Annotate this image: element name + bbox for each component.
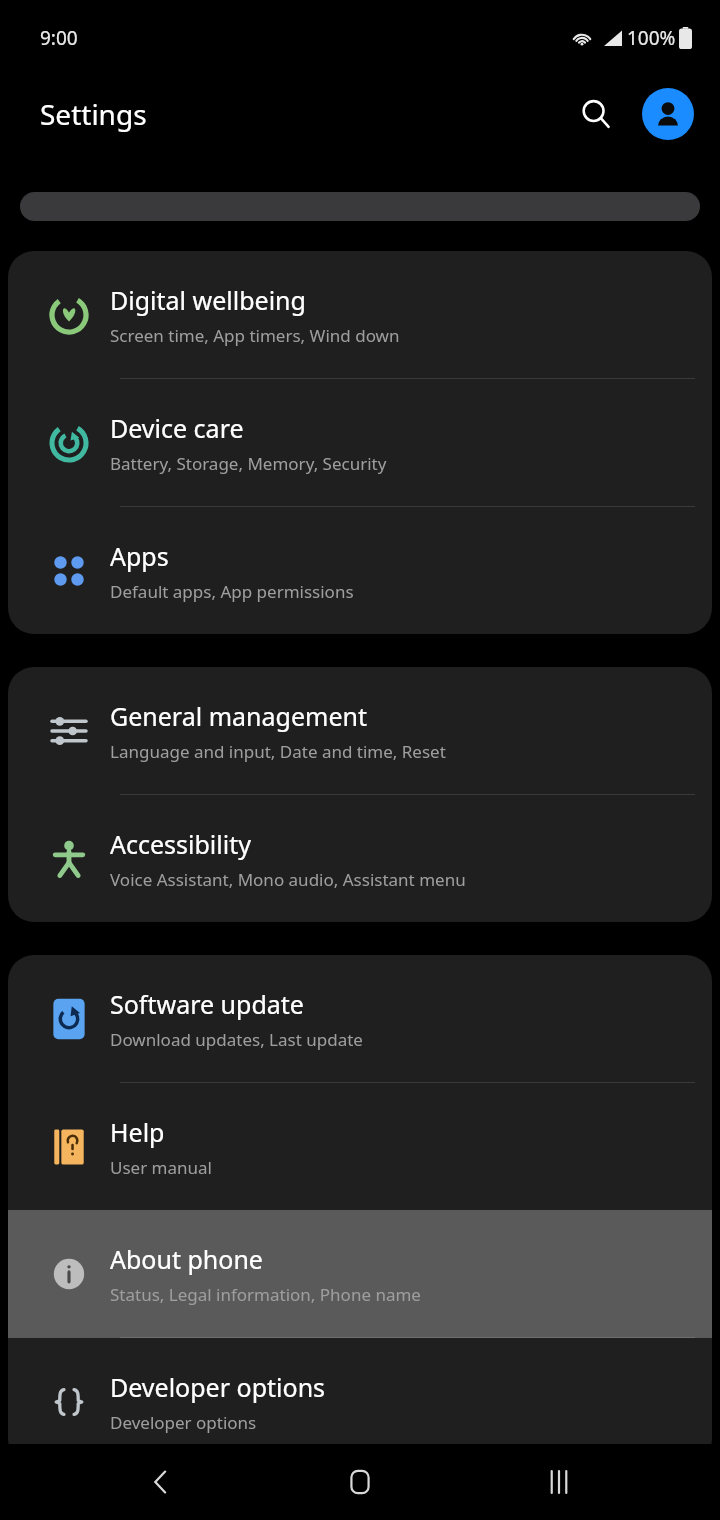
button[interactable]: Back (123, 1444, 199, 1520)
staticText: Language and input, Date and time, Reset (110, 740, 446, 763)
staticText: Developer options (110, 1411, 257, 1434)
staticText: Software update (110, 987, 304, 1021)
staticText: Voice Assistant, Mono audio, Assistant m… (110, 868, 466, 891)
staticText: Default apps, App permissions (110, 580, 354, 603)
staticText: 9:00 (40, 25, 78, 51)
staticText: Digital wellbeing (110, 283, 306, 317)
staticText: Accessibility (110, 827, 251, 861)
button[interactable]: Device care (8, 379, 712, 506)
staticText: Settings (40, 95, 147, 133)
button[interactable]: Help (8, 1083, 712, 1210)
staticText: Screen time, App timers, Wind down (110, 324, 400, 347)
staticText: 100% (627, 25, 676, 51)
button[interactable]: Apps (8, 507, 712, 634)
button[interactable]: Digital wellbeing (8, 251, 712, 378)
button[interactable]: Home (322, 1444, 398, 1520)
button[interactable]: Accessibility (8, 795, 712, 922)
staticText: Apps (110, 539, 169, 573)
staticText: User manual (110, 1156, 212, 1179)
staticText: Status, Legal information, Phone name (110, 1283, 421, 1306)
button[interactable]: Search settings (20, 192, 700, 221)
staticText: Battery, Storage, Memory, Security (110, 452, 387, 475)
button[interactable]: Software update (8, 955, 712, 1082)
button[interactable]: About phone (8, 1210, 712, 1338)
button[interactable]: Search (568, 86, 624, 142)
staticText: About phone (110, 1242, 263, 1276)
button[interactable]: General management (8, 667, 712, 794)
button[interactable]: Recent apps (521, 1444, 597, 1520)
button[interactable]: Account (642, 88, 694, 140)
staticText: Help (110, 1115, 165, 1149)
staticText: Device care (110, 411, 244, 445)
staticText: Download updates, Last update (110, 1028, 363, 1051)
staticText: General management (110, 699, 367, 733)
staticText: Developer options (110, 1370, 326, 1404)
button[interactable]: Developer options (8, 1338, 712, 1465)
